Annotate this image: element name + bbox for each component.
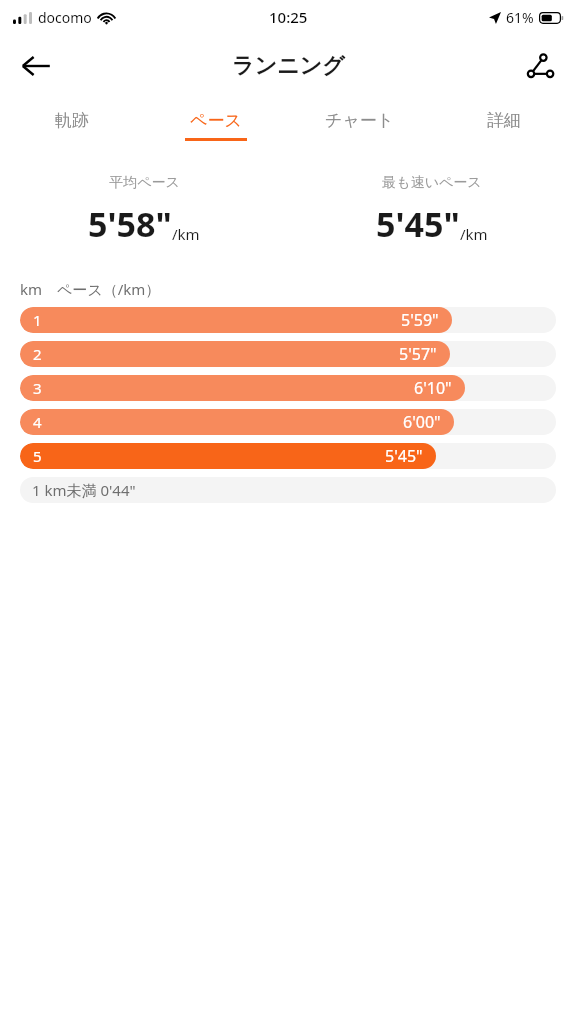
button[interactable]: ペース bbox=[144, 98, 288, 152]
staticText: 平均ペース bbox=[109, 174, 180, 192]
staticText: 5'59" bbox=[401, 309, 439, 331]
staticText: docomo bbox=[38, 8, 92, 27]
staticText: 5'58" bbox=[88, 201, 172, 247]
staticText: 6'00" bbox=[403, 411, 441, 433]
staticText: 61% bbox=[506, 8, 534, 27]
staticText: チャート bbox=[325, 110, 395, 131]
staticText: /km bbox=[172, 224, 200, 244]
staticText: 5'57" bbox=[399, 343, 437, 365]
button[interactable]: 2 bbox=[20, 341, 556, 367]
button[interactable]: 軌跡 bbox=[0, 98, 144, 152]
staticText: km ペース（/km） bbox=[20, 279, 161, 299]
button[interactable]: 5 bbox=[20, 443, 556, 469]
staticText: 5'45" bbox=[376, 201, 460, 247]
staticText: 6'10" bbox=[414, 377, 452, 399]
staticText: 軌跡 bbox=[55, 110, 89, 131]
staticText: 最も速いペース bbox=[382, 174, 482, 192]
staticText: 4 bbox=[33, 412, 42, 432]
button[interactable]: 1 km未満 0'44" bbox=[20, 477, 556, 503]
staticText: 5'45" bbox=[385, 445, 423, 467]
staticText: 1 km未満 0'44" bbox=[32, 480, 136, 500]
staticText: 1 bbox=[33, 310, 42, 330]
staticText: ペース bbox=[190, 110, 242, 131]
button[interactable]: Back bbox=[10, 40, 62, 92]
staticText: 5 bbox=[33, 446, 42, 466]
staticText: ランニング bbox=[232, 52, 345, 80]
staticText: 3 bbox=[33, 378, 42, 398]
button[interactable]: 3 bbox=[20, 375, 556, 401]
button[interactable]: チャート bbox=[288, 98, 432, 152]
button[interactable]: 4 bbox=[20, 409, 556, 435]
staticText: 10:25 bbox=[269, 7, 308, 27]
button[interactable]: 1 bbox=[20, 307, 556, 333]
staticText: 詳細 bbox=[487, 110, 521, 131]
button[interactable]: Share bbox=[514, 40, 566, 92]
staticText: 2 bbox=[33, 344, 42, 364]
button[interactable]: 詳細 bbox=[432, 98, 576, 152]
staticText: /km bbox=[460, 224, 488, 244]
